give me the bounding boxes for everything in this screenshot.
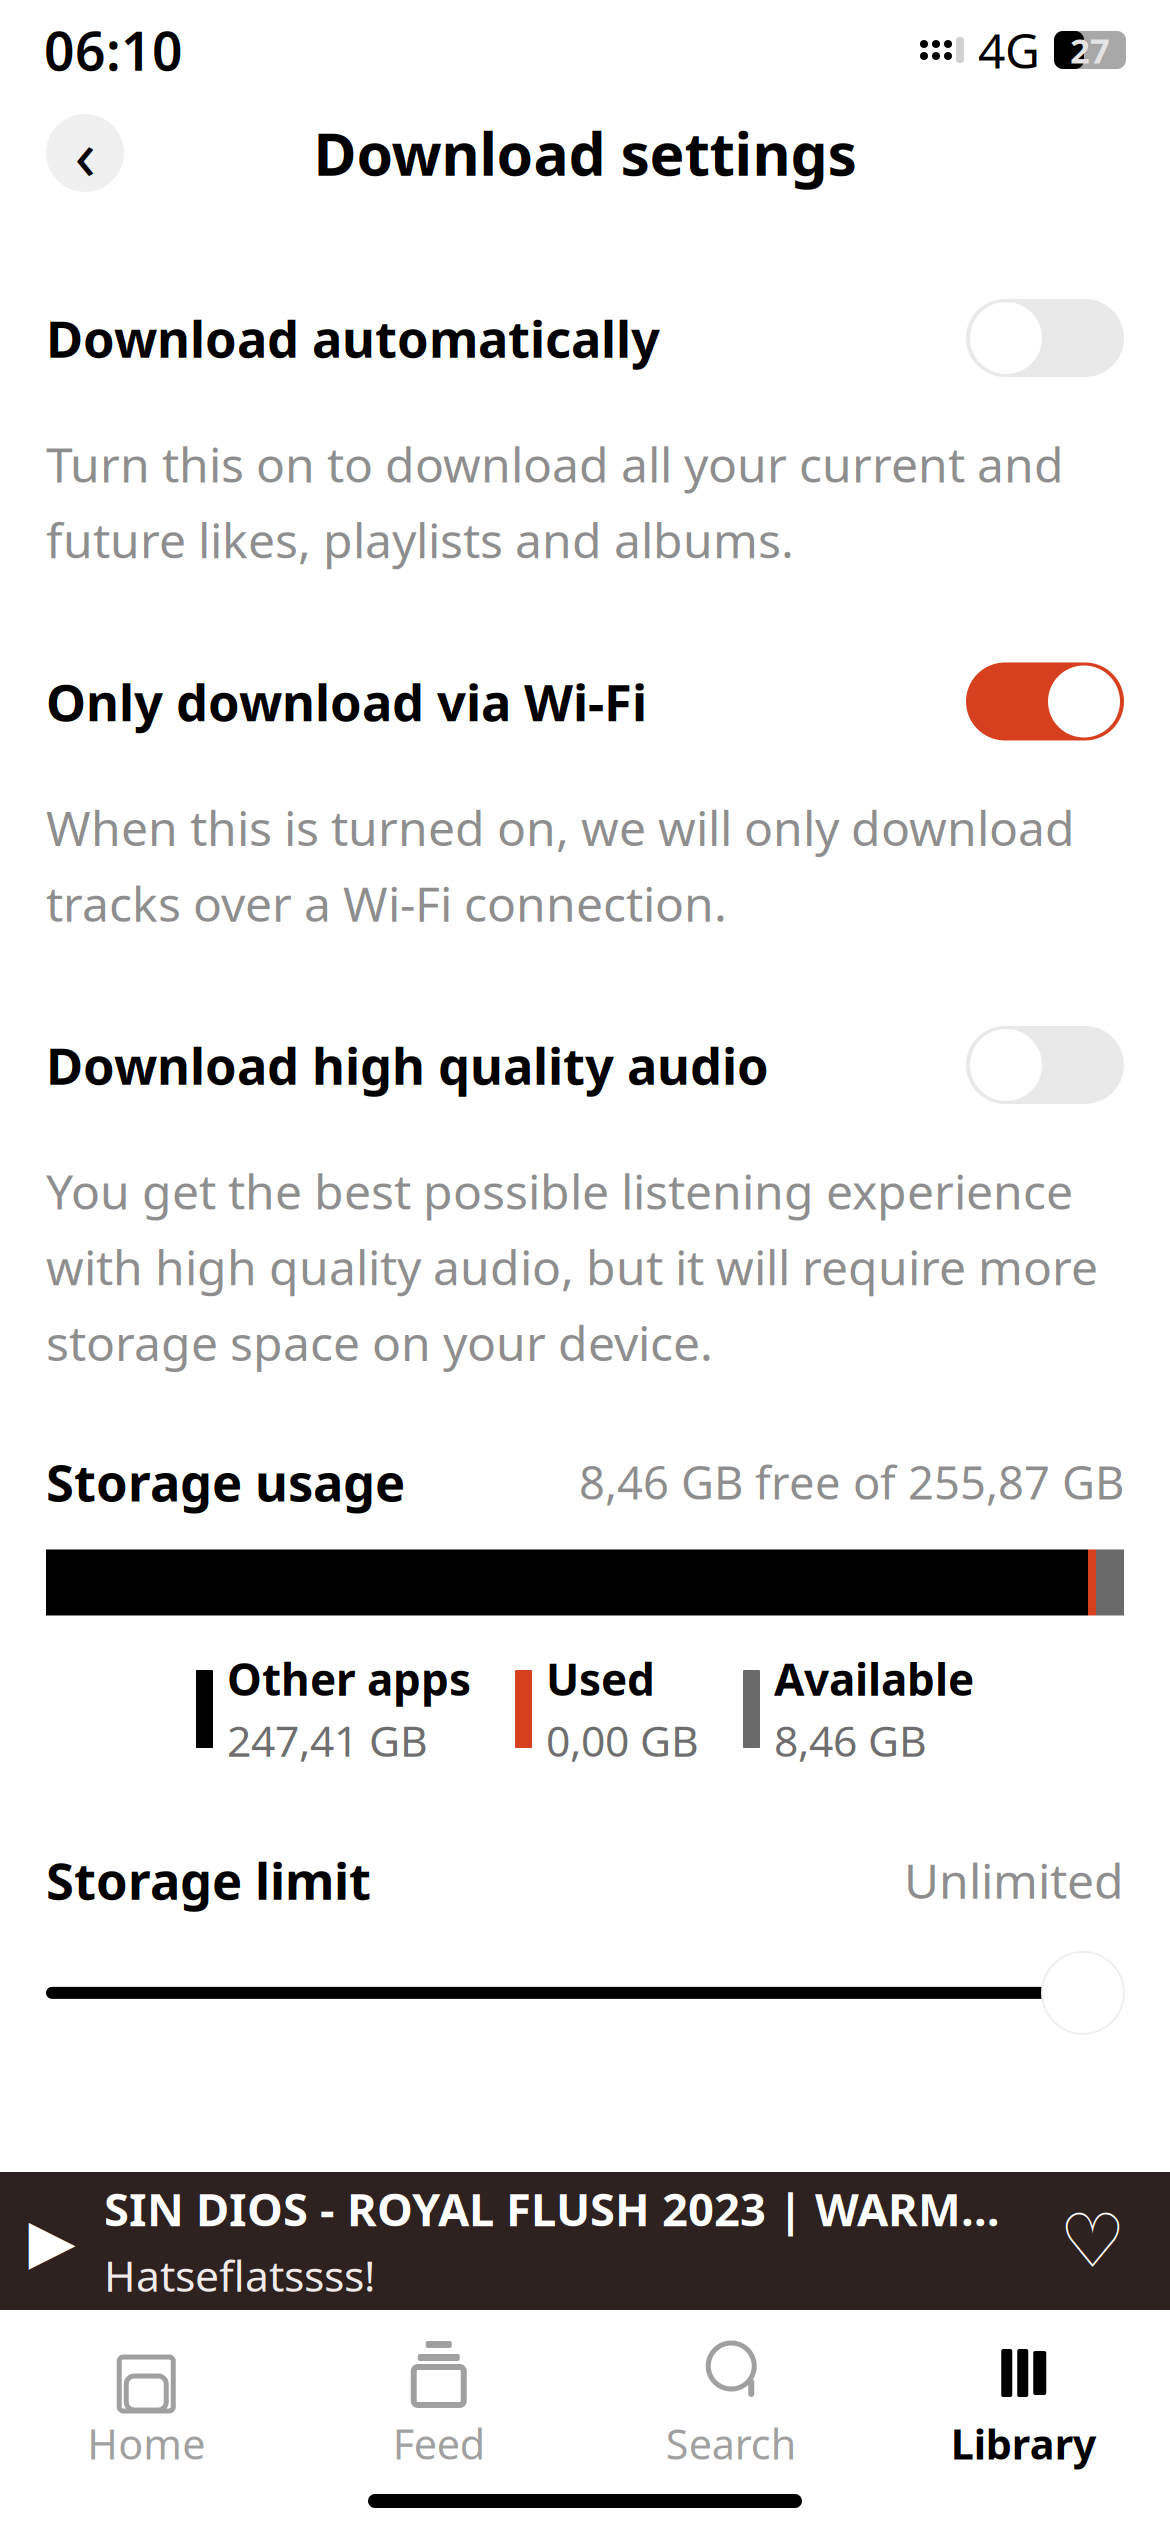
staticText: Storage usage <box>46 1448 405 1515</box>
staticText: Search <box>666 2416 797 2471</box>
staticText: Download high quality audio <box>46 1031 769 1099</box>
staticText: Turn this on to download all your curren… <box>46 432 1064 571</box>
staticText: You get the best possible listening expe… <box>46 1159 1098 1374</box>
staticText: Available <box>774 1649 974 1708</box>
button[interactable]: Feed <box>292 2326 585 2485</box>
button[interactable]: Only download via Wi-Fi <box>0 641 1170 761</box>
staticText: 8,46 GB free of 255,87 GB <box>579 1452 1124 1512</box>
staticText: ▶ <box>28 2206 75 2276</box>
staticText: 247,41 GB <box>227 1712 428 1769</box>
staticText: ♡ <box>1059 2199 1126 2283</box>
button[interactable]: Download high quality audio <box>0 1005 1170 1125</box>
staticText: ‹ <box>74 107 95 199</box>
staticText: 27 <box>1070 27 1110 73</box>
staticText: 0,00 GB <box>546 1712 699 1769</box>
button[interactable]: Download automatically <box>0 278 1170 398</box>
staticText: 06:10 <box>44 15 183 85</box>
staticText: Download automatically <box>46 304 660 372</box>
staticText: Only download via Wi-Fi <box>46 668 647 735</box>
staticText: Library <box>951 2416 1097 2471</box>
button[interactable]: ▶ <box>0 2172 1170 2310</box>
button[interactable]: Storage limit slider <box>1042 1952 1124 2034</box>
button[interactable]: Back <box>46 114 124 192</box>
staticText: 4G <box>978 18 1040 82</box>
button[interactable]: Home <box>0 2326 292 2485</box>
staticText: SIN DIOS - ROYAL FLUSH 2023 | WARM… <box>104 2179 1000 2239</box>
staticText: Feed <box>393 2416 485 2471</box>
staticText: Used <box>546 1649 655 1708</box>
staticText: When this is turned on, we will only dow… <box>46 795 1075 935</box>
button[interactable]: Library <box>877 2326 1170 2485</box>
staticText: 8,46 GB <box>774 1712 927 1769</box>
staticText: Download settings <box>313 114 856 192</box>
button[interactable]: Search <box>585 2326 877 2485</box>
staticText: Hatseflatssss! <box>104 2247 375 2303</box>
staticText: Storage limit <box>46 1847 371 1914</box>
staticText: Home <box>87 2416 205 2471</box>
staticText: Other apps <box>227 1649 471 1708</box>
staticText: Unlimited <box>904 1848 1124 1912</box>
